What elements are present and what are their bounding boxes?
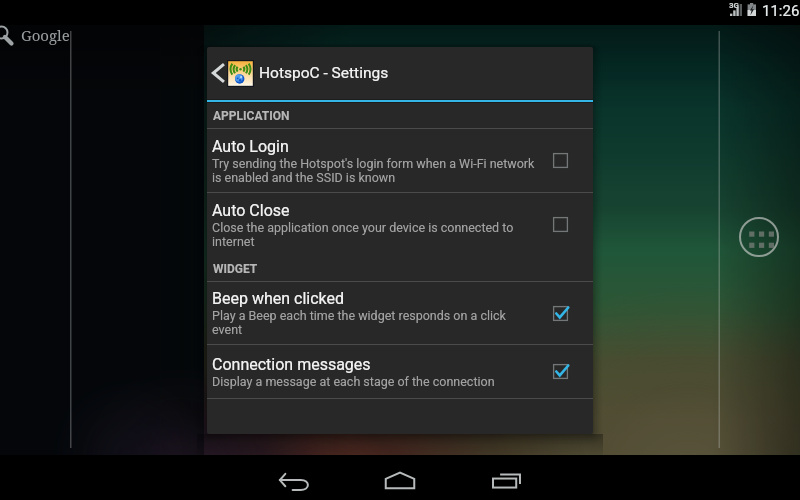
button[interactable]: Navigate up	[207, 47, 593, 99]
staticText: Connection messages	[212, 355, 371, 374]
staticText: Auto Close	[212, 201, 290, 220]
staticText: WIDGET	[213, 262, 258, 276]
staticText: Auto Login	[212, 137, 289, 156]
button[interactable]: Auto Login	[207, 129, 593, 192]
button[interactable]: Back	[241, 455, 347, 500]
button[interactable]: Beep when clicked	[207, 282, 593, 344]
button[interactable]: Auto Close	[207, 193, 593, 256]
staticText: Google	[21, 25, 70, 45]
button[interactable]: Recent apps	[453, 455, 559, 500]
staticText: Play a Beep each time the widget respond…	[212, 308, 537, 337]
staticText: Try sending the Hotspot's login form whe…	[212, 156, 537, 185]
staticText: HotspoC - Settings	[259, 64, 389, 82]
button[interactable]: Connection messages	[207, 345, 593, 398]
staticText: Display a message at each stage of the c…	[212, 374, 495, 389]
staticText: 3G	[729, 1, 740, 10]
button[interactable]: Home	[347, 455, 453, 500]
staticText: Beep when clicked	[212, 289, 345, 308]
staticText: 11:26	[762, 2, 800, 20]
staticText: Close the application once your device i…	[212, 220, 537, 249]
staticText: APPLICATION	[213, 109, 290, 123]
